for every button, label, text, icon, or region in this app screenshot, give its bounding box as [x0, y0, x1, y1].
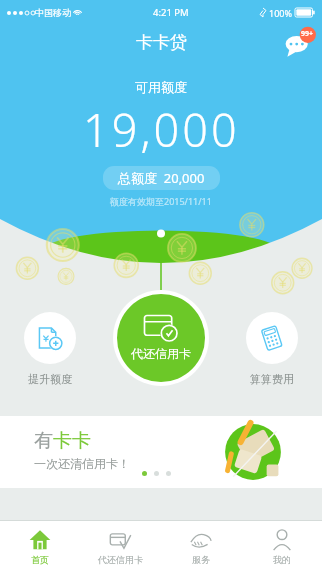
staticText: 中国移动: [35, 7, 71, 18]
staticText: 总额度 20,000: [118, 169, 205, 187]
staticText: 算算费用: [250, 372, 294, 386]
staticText: 100%: [269, 7, 292, 19]
staticText: 一次还清信用卡！: [34, 456, 130, 471]
staticText: 19,000: [83, 99, 240, 160]
staticText: 卡卡: [53, 429, 91, 453]
staticText: 额度有效期至2015/11/11: [110, 195, 212, 207]
staticText: 我的: [273, 554, 291, 565]
staticText: 有: [34, 429, 53, 453]
staticText: 可用额度: [135, 79, 187, 95]
button[interactable]: 算算费用: [246, 312, 298, 386]
button[interactable]: 我的: [241, 521, 322, 572]
staticText: 代还信用卡: [131, 346, 191, 361]
staticText: 卡卡贷: [136, 32, 187, 53]
staticText: 99+: [301, 29, 314, 39]
staticText: 4:21 PM: [153, 6, 189, 19]
button[interactable]: 代还信用卡: [117, 294, 205, 382]
button[interactable]: 服务: [160, 521, 241, 572]
button[interactable]: 首页: [0, 521, 80, 572]
button[interactable]: 有: [0, 416, 322, 488]
staticText: 首页: [31, 554, 49, 565]
staticText: 服务: [192, 554, 210, 565]
staticText: 代还信用卡: [98, 554, 143, 565]
staticText: 提升额度: [28, 372, 72, 386]
button[interactable]: 代还信用卡: [80, 521, 160, 572]
button[interactable]: 提升额度: [24, 312, 76, 386]
button[interactable]: Messages: [285, 27, 315, 57]
